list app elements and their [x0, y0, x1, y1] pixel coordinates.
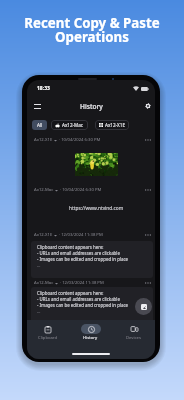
- button[interactable]: Copied image: [75, 153, 118, 176]
- staticText: · 10/04/2024 6:30 PM: [60, 187, 102, 193]
- button[interactable]: History: [69, 324, 112, 341]
- staticText: ...: [37, 308, 41, 314]
- button[interactable]: Menu: [31, 100, 43, 112]
- staticText: All: [37, 122, 43, 128]
- button[interactable]: https://www.ntvind.com: [69, 205, 124, 212]
- staticText: - URLs and email addresses are clickable: [37, 250, 120, 256]
- staticText: - Images can be edited and cropped in pl…: [37, 256, 129, 262]
- staticText: Ax12-Mac: [34, 280, 54, 286]
- staticText: Ax12-X1E: [34, 137, 53, 143]
- staticText: Ax12-Mac: [34, 187, 54, 193]
- staticText: ...: [37, 262, 41, 268]
- staticText: · 12/03/2024 11:38 PM: [60, 280, 104, 286]
- button[interactable]: Ax12-Mac: [27, 278, 155, 288]
- button[interactable]: Ax12-Mac: [51, 120, 88, 130]
- button[interactable]: Ax12-X1E: [95, 120, 129, 130]
- staticText: History: [83, 335, 98, 341]
- button[interactable]: More options: [143, 278, 153, 288]
- staticText: Devices: [126, 335, 141, 341]
- staticText: · 10/04/2024 6:30 PM: [59, 137, 101, 143]
- staticText: Recent Copy & Paste Operations: [0, 14, 184, 46]
- staticText: Ax12-Mac: [62, 122, 84, 128]
- staticText: History: [80, 102, 103, 111]
- button[interactable]: Paste: [135, 298, 152, 315]
- staticText: - URLs and email addresses are clickable: [37, 296, 120, 302]
- staticText: Clipboard content appears here:: [37, 244, 104, 250]
- button[interactable]: Ax12-Mac: [27, 185, 155, 195]
- staticText: Clipboard: [38, 335, 58, 341]
- button[interactable]: Ax12-X1E: [27, 230, 155, 240]
- button[interactable]: All: [32, 120, 47, 130]
- staticText: Clipboard content appears here:: [37, 290, 104, 296]
- button[interactable]: Clipboard content appears here:: [31, 287, 153, 324]
- staticText: 18:33: [37, 85, 50, 92]
- button[interactable]: Clipboard: [27, 324, 69, 341]
- button[interactable]: More options: [143, 185, 153, 195]
- button[interactable]: Devices: [112, 324, 155, 341]
- button[interactable]: Ax12-X1E: [27, 135, 155, 145]
- staticText: Ax12-X1E: [34, 232, 53, 238]
- staticText: - Images can be edited and cropped in pl…: [37, 302, 129, 308]
- button[interactable]: More options: [143, 230, 153, 240]
- button[interactable]: More options: [143, 135, 153, 145]
- staticText: · 12/03/2024 11:38 PM: [59, 232, 103, 238]
- staticText: Ax12-X1E: [105, 122, 125, 128]
- button[interactable]: Clipboard content appears here:: [31, 241, 153, 278]
- button[interactable]: Settings: [142, 100, 154, 112]
